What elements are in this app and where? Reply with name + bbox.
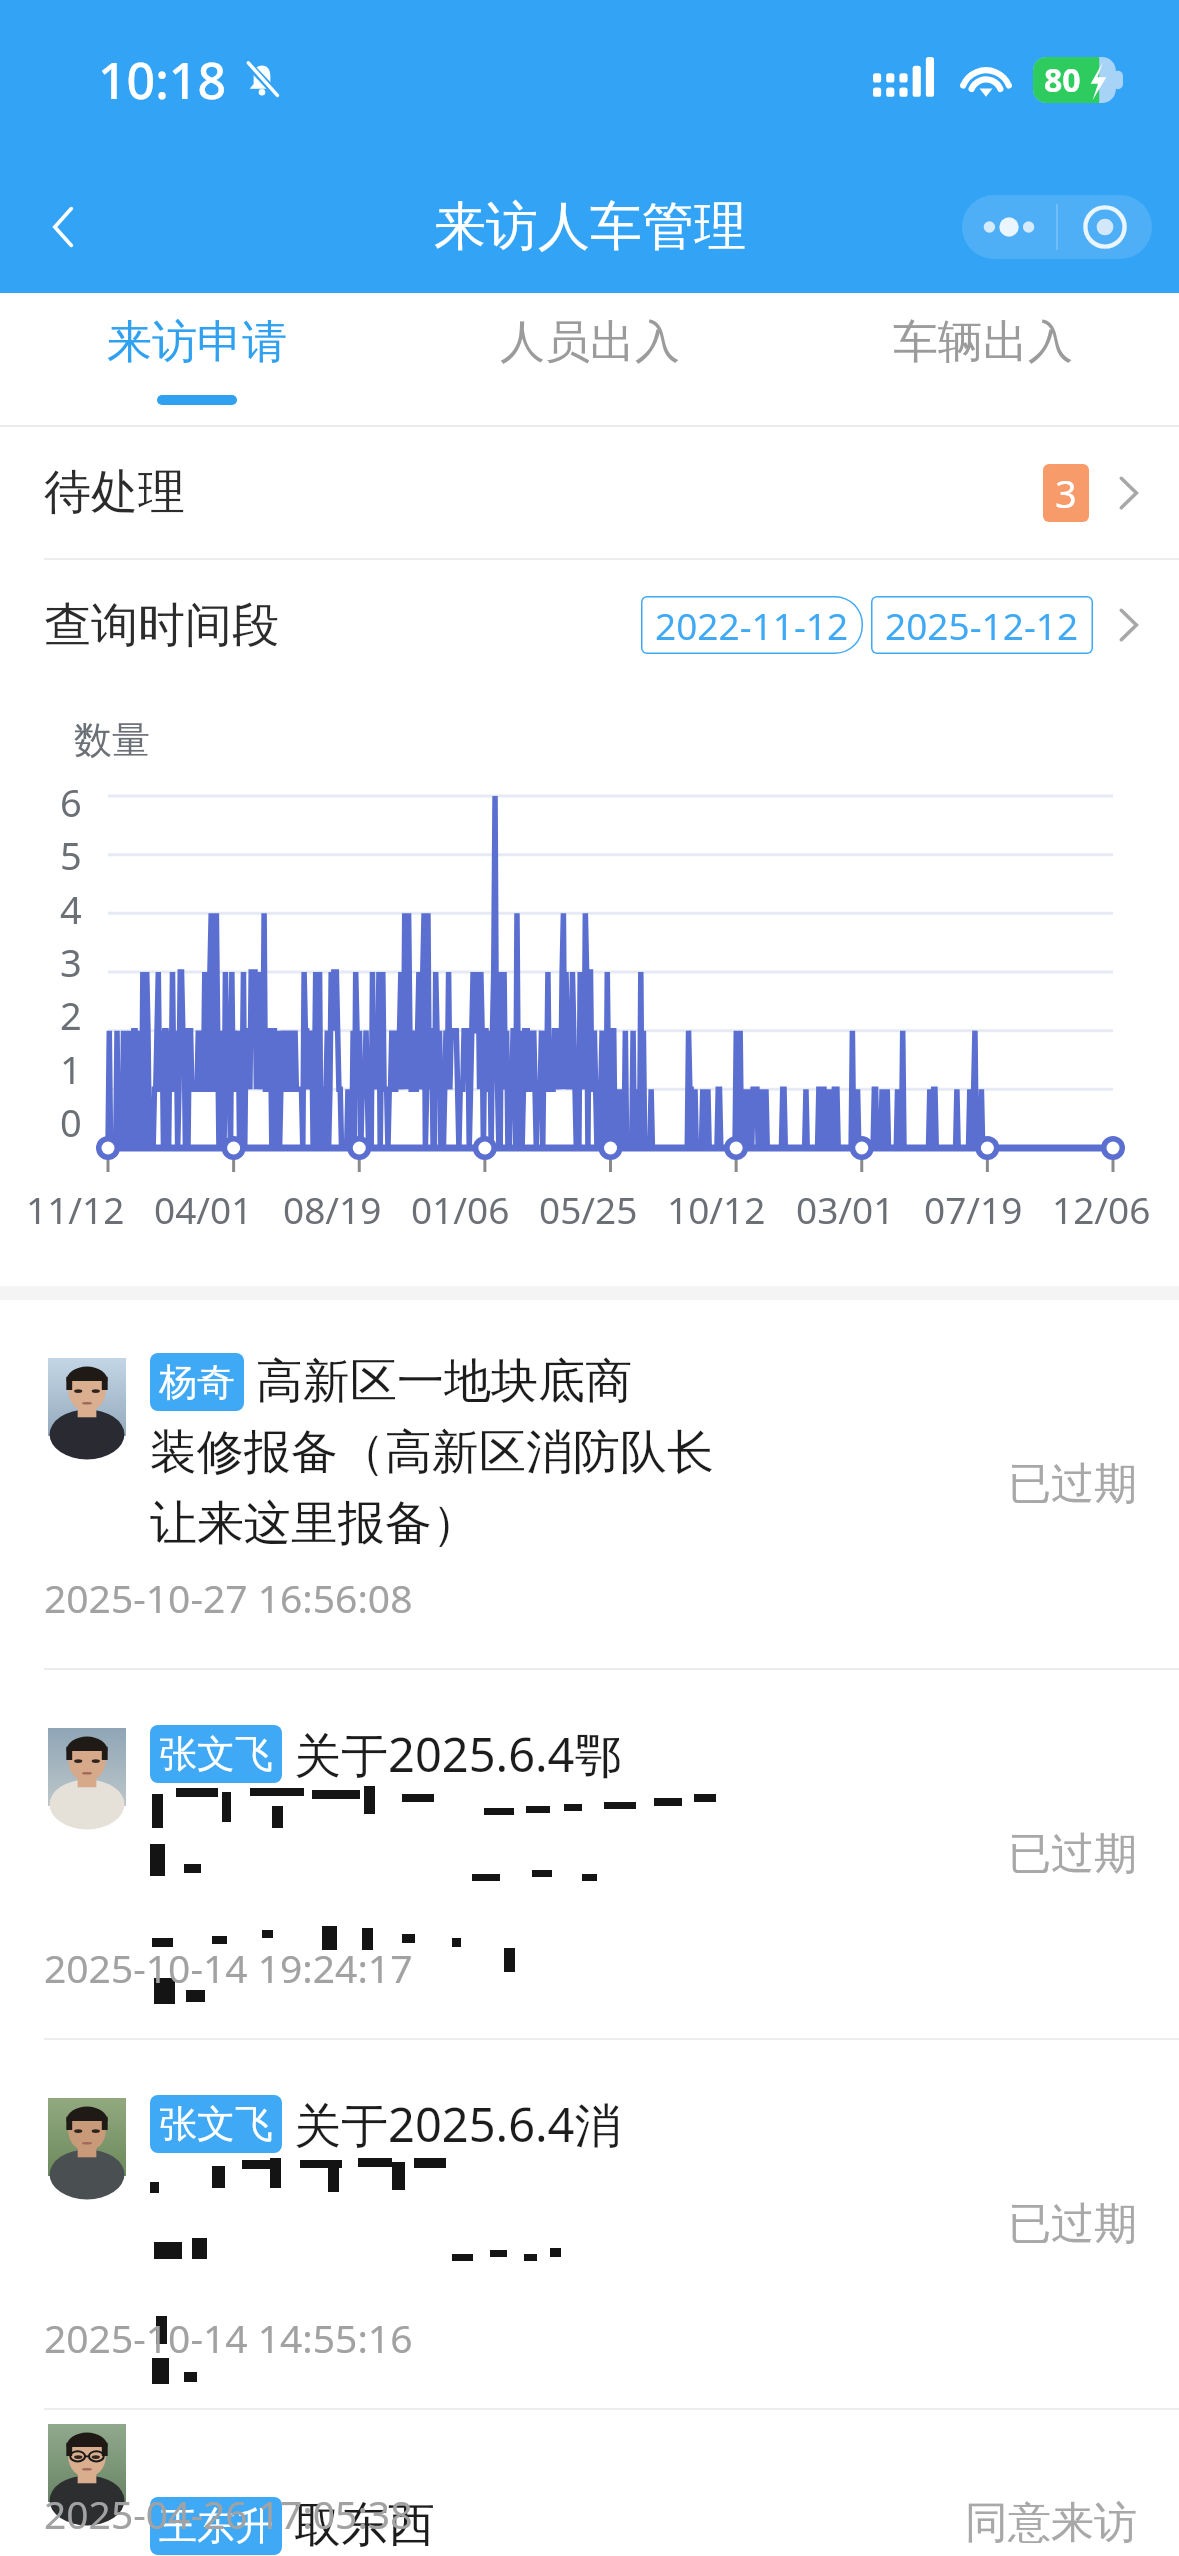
staticText: 车辆出入 <box>893 314 1073 371</box>
staticText: 05/25 <box>539 1184 638 1234</box>
staticText: 数量 <box>74 716 150 764</box>
staticText: 80 <box>1044 58 1081 102</box>
staticText: 装修报备（高新区消防队长 <box>150 1423 714 1482</box>
staticText: 1 <box>60 1043 82 1095</box>
staticText: 2025-04-26 17:05:38 <box>44 2487 413 2540</box>
button[interactable]: 2025-12-12 <box>871 596 1093 654</box>
staticText: 让来这里报备） <box>150 1494 479 1553</box>
staticText: 关于2025.6.4鄂 <box>294 1722 622 1786</box>
staticText: 来访申请 <box>107 314 287 371</box>
button[interactable]: 来访申请 <box>0 293 393 425</box>
staticText: 王东升 <box>159 2502 273 2550</box>
staticText: 2 <box>60 989 82 1041</box>
staticText: 07/19 <box>924 1184 1023 1234</box>
staticText: 2022-11-12 <box>655 600 849 650</box>
staticText: 已过期 <box>1008 1457 1137 1511</box>
staticText: 同意来访 <box>965 2496 1137 2550</box>
staticText: 10/12 <box>667 1184 766 1234</box>
staticText: 2025-10-14 19:24:17 <box>44 1941 413 1994</box>
staticText: 4 <box>60 883 82 935</box>
staticText: 已过期 <box>1008 2197 1137 2251</box>
staticText: 关于2025.6.4消 <box>294 2092 622 2156</box>
staticText: 杨奇 <box>159 1358 235 1406</box>
staticText: 张文飞 <box>159 1730 273 1778</box>
button[interactable]: 王东升 <box>0 2410 1179 2556</box>
staticText: 查询时间段 <box>44 596 279 655</box>
staticText: 03/01 <box>796 1184 895 1234</box>
staticText: 10:18 <box>98 46 226 114</box>
button[interactable]: 张文飞 <box>0 2040 1179 2408</box>
staticText: 0 <box>60 1096 82 1148</box>
staticText: 2025-12-12 <box>885 600 1079 650</box>
staticText: 已过期 <box>1008 1827 1137 1881</box>
staticText: 3 <box>1055 467 1077 519</box>
staticText: 3 <box>60 936 82 988</box>
button[interactable]: 车辆出入 <box>786 293 1179 425</box>
staticText: 张文飞 <box>159 2100 273 2148</box>
staticText: 待处理 <box>44 463 185 522</box>
button[interactable]: 人员出入 <box>393 293 786 425</box>
button[interactable]: 张文飞 <box>0 1670 1179 2038</box>
staticText: 取东西 <box>294 2496 435 2555</box>
button[interactable]: 更多菜单 <box>962 195 1152 259</box>
button[interactable]: 返回 <box>22 185 106 269</box>
staticText: 01/06 <box>411 1184 510 1234</box>
button[interactable]: 杨奇 <box>0 1300 1179 1668</box>
staticText: 11/12 <box>26 1184 125 1234</box>
staticText: 6 <box>60 776 82 828</box>
staticText: 5 <box>60 829 82 881</box>
staticText: 2025-10-27 16:56:08 <box>44 1571 413 1624</box>
button[interactable]: 查询时间段 <box>0 560 1179 690</box>
staticText: 12/06 <box>1052 1184 1151 1234</box>
button[interactable]: 2022-11-12 <box>641 596 863 654</box>
staticText: 来访人车管理 <box>434 194 746 260</box>
staticText: 04/01 <box>154 1184 253 1234</box>
staticText: 高新区一地块底商 <box>256 1352 632 1411</box>
staticText: 2025-10-14 14:55:16 <box>44 2311 413 2364</box>
button[interactable]: 待处理 <box>0 427 1179 558</box>
staticText: 人员出入 <box>500 314 680 371</box>
staticText: 08/19 <box>283 1184 382 1234</box>
